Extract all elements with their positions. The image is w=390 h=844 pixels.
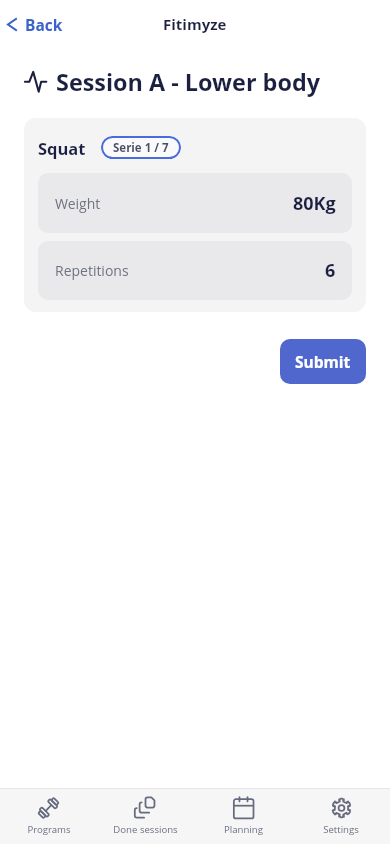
staticText: Repetitions: [55, 261, 129, 280]
button[interactable]: Repetitions: [38, 241, 352, 300]
staticText: 6: [325, 258, 336, 283]
staticText: Planning: [224, 823, 263, 836]
staticText: Squat: [38, 137, 86, 159]
staticText: Settings: [323, 823, 359, 836]
staticText: Back: [25, 14, 63, 35]
button[interactable]: Serie 1 / 7: [101, 136, 181, 159]
staticText: Session A - Lower body: [56, 66, 321, 98]
button[interactable]: Back: [0, 8, 71, 41]
staticText: Weight: [55, 194, 101, 213]
button[interactable]: Settings: [292, 789, 390, 844]
button[interactable]: Done sessions: [97, 789, 194, 844]
staticText: Fitimyze: [163, 14, 227, 34]
staticText: Programs: [27, 823, 71, 836]
button[interactable]: Programs: [0, 789, 97, 844]
button[interactable]: Submit: [280, 339, 366, 384]
staticText: Serie 1 / 7: [113, 140, 169, 156]
staticText: Submit: [295, 351, 351, 372]
staticText: Done sessions: [113, 823, 178, 836]
button[interactable]: Weight: [38, 173, 352, 233]
staticText: 80Kg: [293, 191, 336, 216]
button[interactable]: Planning: [194, 789, 292, 844]
